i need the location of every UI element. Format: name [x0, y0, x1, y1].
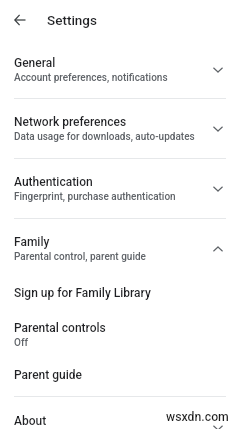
button[interactable]: About — [0, 408, 240, 429]
staticText: Off — [14, 337, 28, 349]
button[interactable]: Family — [0, 229, 240, 278]
staticText: Sign up for Family Library — [14, 286, 151, 300]
staticText: Parent guide — [14, 368, 83, 382]
button[interactable]: Parental controls — [0, 315, 240, 361]
button[interactable]: Authentication — [0, 169, 240, 218]
button[interactable]: Sign up for Family Library — [0, 280, 240, 312]
staticText: General — [14, 56, 56, 70]
button[interactable]: Parent guide — [0, 362, 240, 394]
staticText: Data usage for downloads, auto-updates — [14, 131, 195, 143]
button[interactable]: General — [0, 50, 240, 99]
staticText: Settings — [47, 12, 97, 28]
button[interactable]: Back — [6, 6, 34, 34]
staticText: Network preferences — [14, 115, 127, 129]
staticText: Authentication — [14, 175, 93, 189]
button[interactable]: Network preferences — [0, 109, 240, 158]
staticText: wsxdn.com — [166, 410, 229, 424]
staticText: Parental control, parent guide — [14, 251, 146, 263]
staticText: Parental controls — [14, 321, 106, 335]
staticText: Fingerprint, purchase authentication — [14, 191, 176, 203]
staticText: About — [14, 414, 47, 428]
staticText: Family — [14, 235, 50, 249]
staticText: Account preferences, notifications — [14, 72, 168, 84]
